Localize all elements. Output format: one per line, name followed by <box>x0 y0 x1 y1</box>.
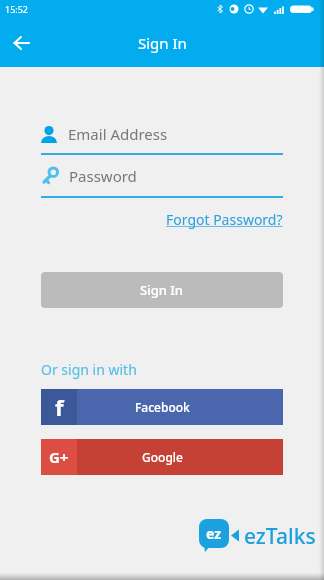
staticText: Sign In <box>138 33 187 53</box>
staticText: G+ <box>49 447 69 467</box>
button[interactable]: Sign In <box>41 272 283 308</box>
staticText: f <box>55 392 64 422</box>
staticText: Facebook <box>135 399 190 415</box>
staticText: 15:52 <box>5 3 29 15</box>
staticText: Password <box>69 166 137 186</box>
staticText: Email Address <box>68 124 168 144</box>
staticText: ez <box>206 524 222 543</box>
staticText: Or sign in with <box>41 360 137 379</box>
staticText: Sign In <box>140 281 184 299</box>
staticText: Google <box>142 449 183 465</box>
button[interactable]: G+ <box>41 439 283 475</box>
button[interactable]: f <box>41 389 283 425</box>
staticText: ezTalks <box>244 522 316 551</box>
button[interactable]: Forgot Password? <box>166 210 283 229</box>
button[interactable] <box>13 36 30 50</box>
